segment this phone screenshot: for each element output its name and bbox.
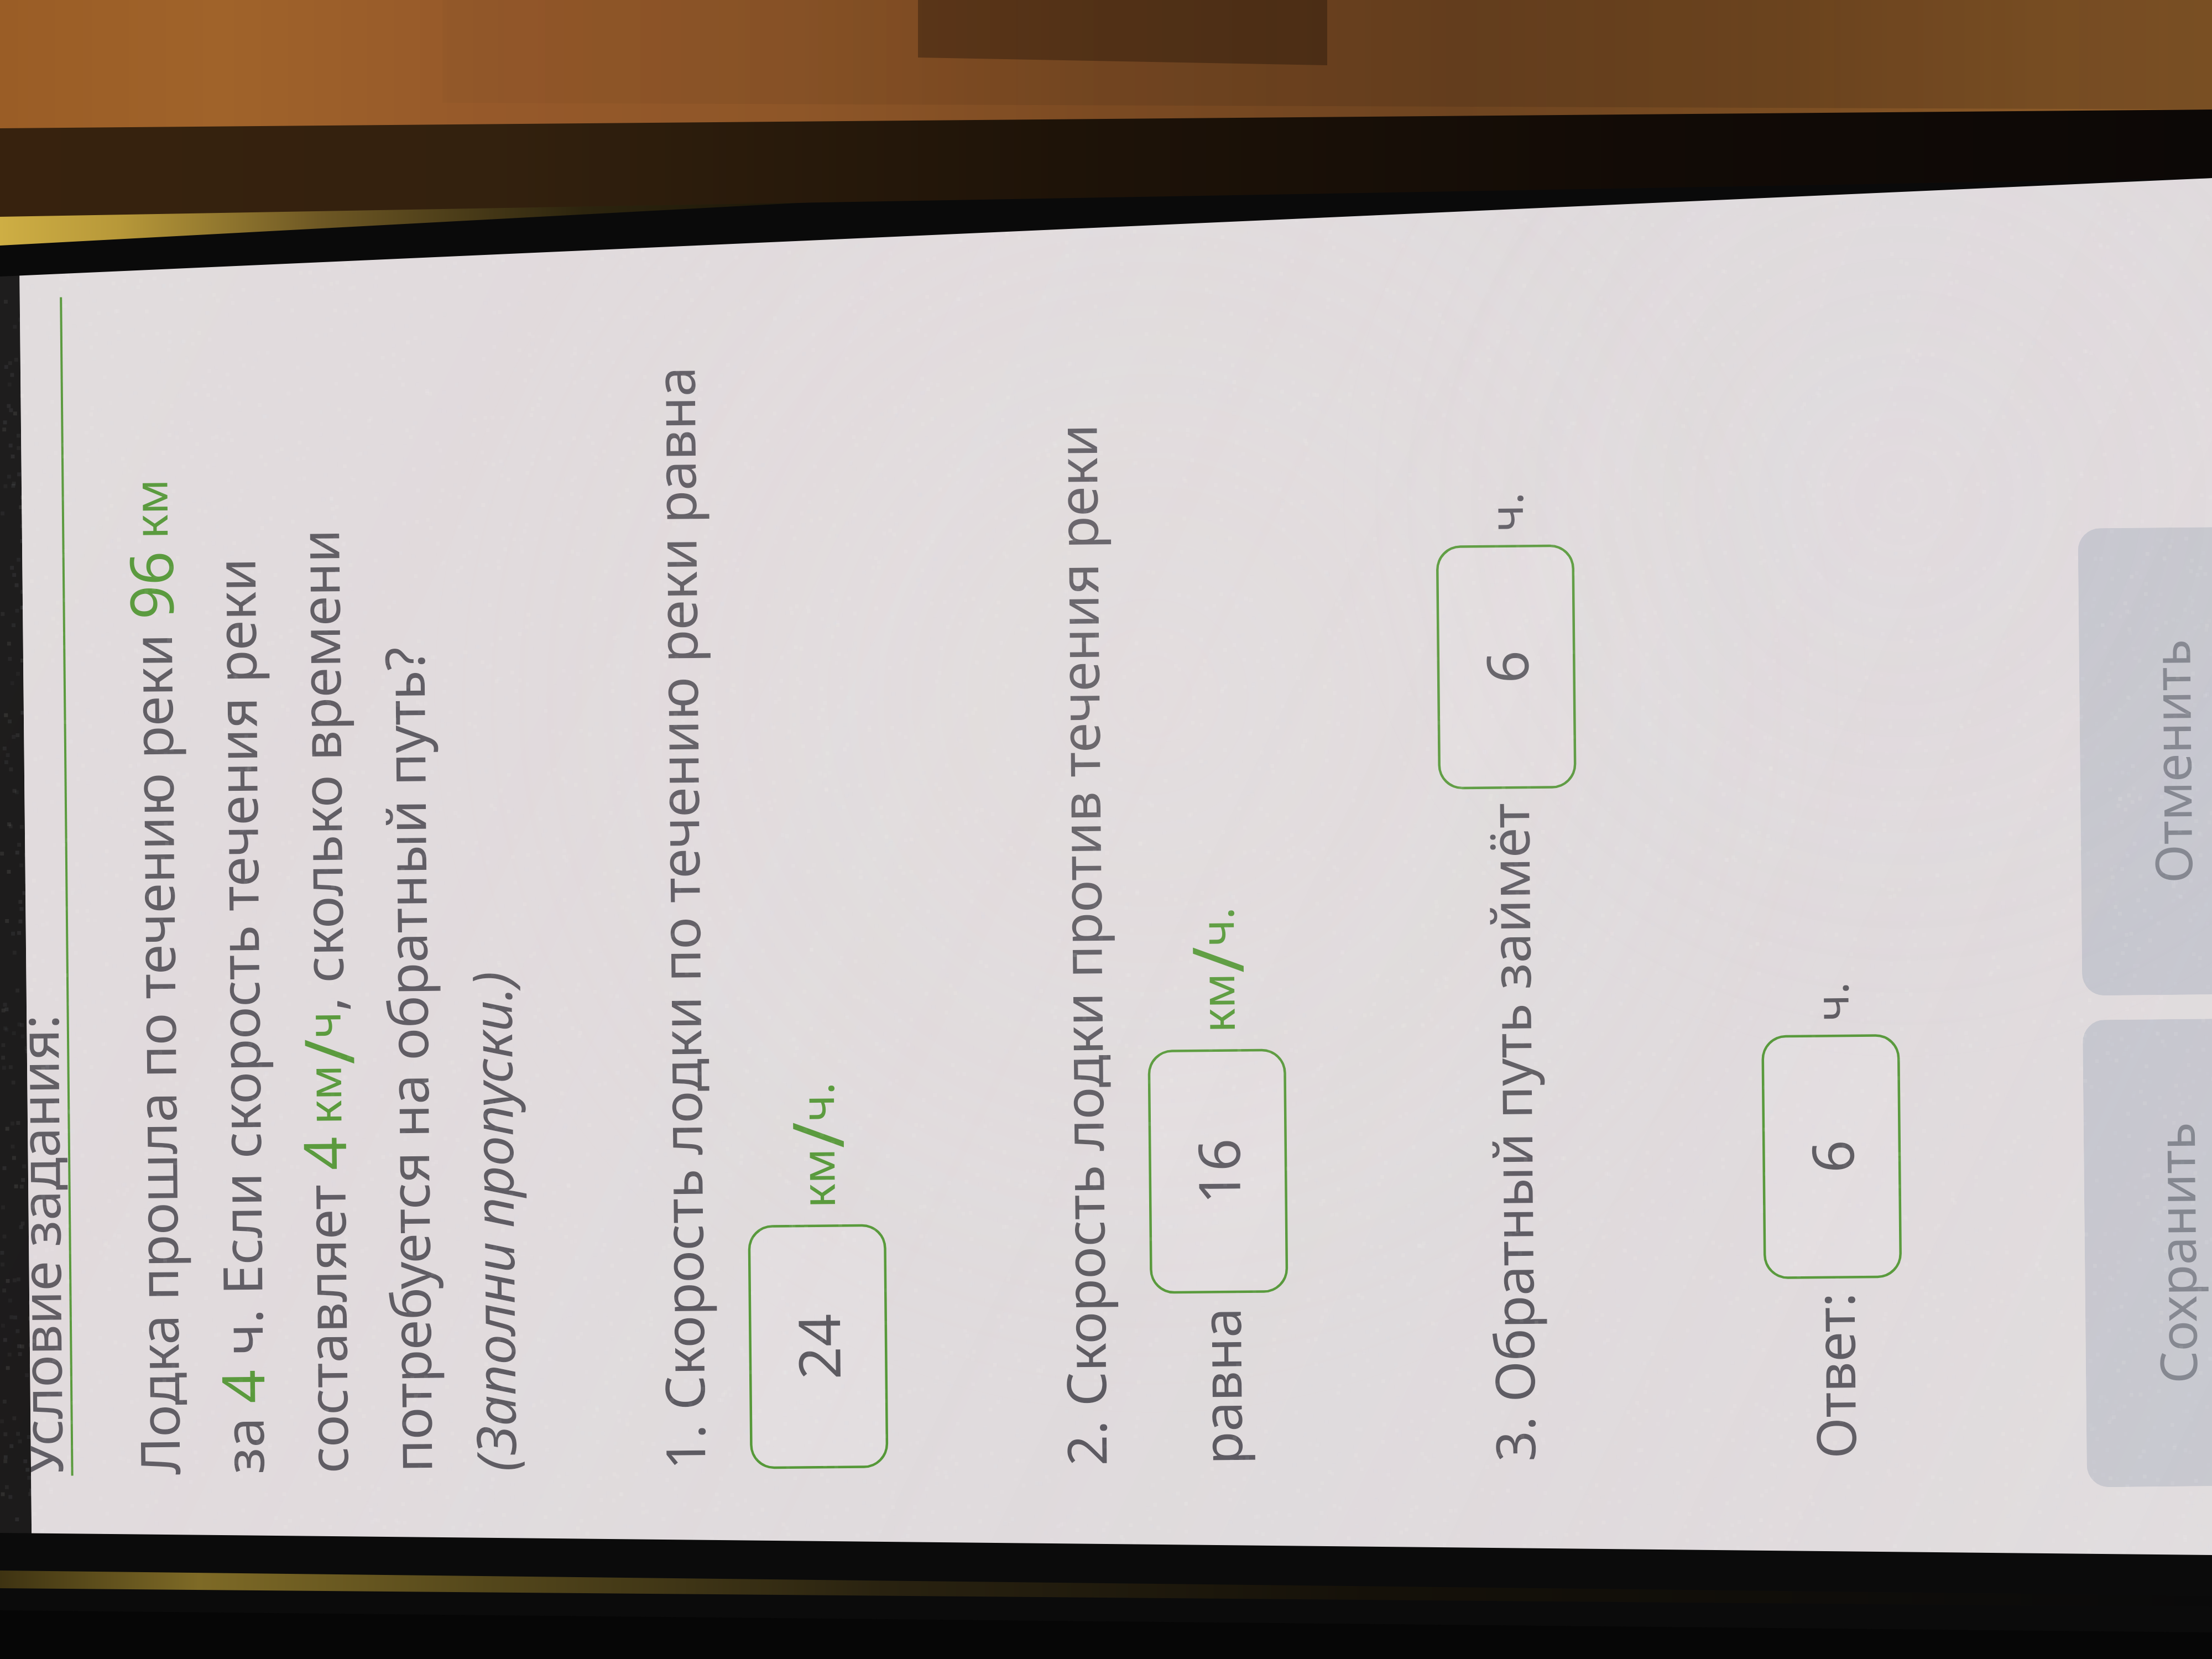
staticText: /: [280, 1038, 365, 1065]
button[interactable]: Поле ответа 6: [1436, 544, 1576, 790]
staticText: 96: [109, 550, 191, 620]
staticText: км: [292, 1064, 355, 1137]
staticText: за: [205, 1403, 280, 1474]
staticText: , сколько времени: [281, 528, 359, 1012]
button[interactable]: Поле ответа 16: [1148, 1049, 1288, 1294]
staticText: 3. Обратный путь займёт: [1471, 789, 1551, 1462]
staticText: равна: [1183, 1293, 1258, 1465]
staticText: ч.: [1474, 492, 1536, 532]
button[interactable]: Отменить: [2078, 527, 2212, 996]
staticText: ч: [291, 1011, 354, 1039]
button[interactable]: Сохранить: [2083, 1019, 2212, 1487]
staticText: 1. Скорость лодки по течению реки равна: [637, 366, 721, 1470]
staticText: Условие задания:: [27, 1014, 71, 1476]
staticText: Лодка прошла по течению реки: [114, 619, 196, 1475]
staticText: (Заполни пропуски.): [453, 971, 532, 1472]
staticText: ч.: [1799, 981, 1862, 1022]
staticText: /: [768, 1121, 864, 1149]
staticText: Отменить: [2136, 639, 2207, 883]
staticText: Ответ:: [1796, 1278, 1872, 1459]
staticText: 4: [202, 1369, 282, 1404]
staticText: Сохранить: [2140, 1122, 2212, 1384]
staticText: 4: [284, 1136, 364, 1171]
staticText: 2. Скорость лодки против течения реки: [1039, 423, 1122, 1466]
staticText: потребуется на обратный путь?: [366, 646, 448, 1473]
button[interactable]: Поле ответа 24: [748, 1224, 888, 1469]
staticText: ч.: [1184, 906, 1247, 947]
staticText: 16: [1178, 1138, 1258, 1205]
staticText: км: [118, 479, 181, 551]
staticText: ч. Если скорость течения реки: [197, 557, 279, 1370]
staticText: составляет: [287, 1170, 364, 1474]
staticText: км: [1185, 973, 1248, 1033]
staticText: ч.: [785, 1082, 848, 1122]
button[interactable]: Поле ответа 6: [1761, 1034, 1902, 1279]
staticText: /: [1168, 946, 1264, 974]
staticText: 24: [779, 1313, 858, 1380]
staticText: 6: [1467, 650, 1546, 684]
staticText: 6: [1792, 1139, 1871, 1173]
staticText: км: [785, 1148, 848, 1208]
